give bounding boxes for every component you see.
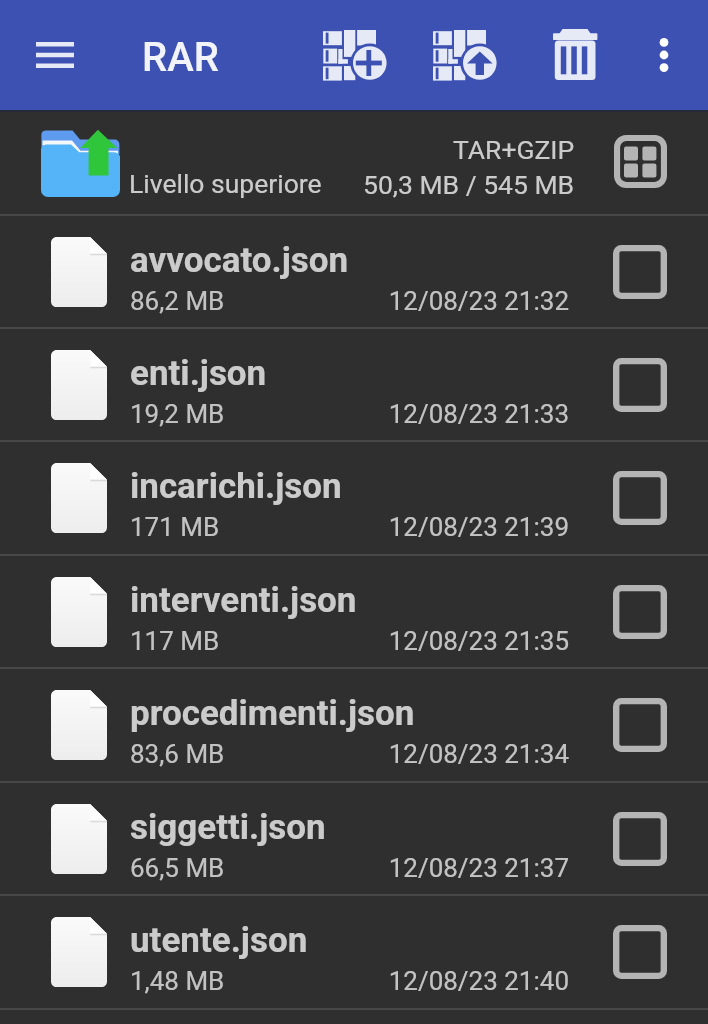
button[interactable]: incarichi.json (0, 442, 708, 554)
staticText: avvocato.json (130, 240, 349, 281)
button[interactable]: Delete (535, 14, 615, 94)
staticText: RAR (142, 34, 219, 81)
button[interactable]: Livello superiore (0, 112, 708, 214)
button[interactable]: Extract archive (423, 13, 509, 99)
staticText: 12/08/23 21:37 (300, 853, 569, 883)
staticText: siggetti.json (130, 807, 326, 848)
button[interactable]: enti.json (0, 329, 708, 440)
staticText: 12/08/23 21:40 (300, 966, 569, 996)
button[interactable]: Grid view (602, 123, 678, 199)
staticText: incarichi.json (130, 466, 342, 507)
staticText: TAR+GZIP (453, 134, 575, 165)
button[interactable]: siggetti.json (0, 783, 708, 894)
staticText: utente.json (130, 920, 308, 961)
staticText: 12/08/23 21:34 (300, 739, 569, 769)
button[interactable]: procedimenti.json (0, 669, 708, 781)
staticText: 66,5 MB (130, 853, 225, 883)
staticText: enti.json (130, 353, 267, 394)
button[interactable]: Select enti.json (602, 347, 678, 423)
staticText: 12/08/23 21:35 (300, 626, 569, 656)
button[interactable]: Select utente.json (602, 914, 678, 990)
staticText: 117 MB (130, 626, 220, 656)
staticText: interventi.json (130, 580, 357, 621)
staticText: 171 MB (130, 512, 220, 542)
button[interactable]: utente.json (0, 896, 708, 1008)
button[interactable]: Navigation menu (18, 18, 92, 92)
staticText: 19,2 MB (130, 399, 225, 429)
staticText: 83,6 MB (130, 739, 225, 769)
button[interactable]: Add to archive (313, 13, 399, 99)
button[interactable]: Select procedimenti.json (602, 687, 678, 763)
button[interactable]: Select avvocato.json (602, 234, 678, 310)
staticText: procedimenti.json (130, 693, 415, 734)
staticText: 12/08/23 21:33 (300, 399, 569, 429)
staticText: 1,48 MB (130, 966, 225, 996)
button[interactable]: interventi.json (0, 556, 708, 667)
button[interactable]: Select interventi.json (602, 574, 678, 650)
staticText: Livello superiore (129, 168, 322, 199)
button[interactable]: More options (630, 21, 698, 89)
button[interactable]: Select incarichi.json (602, 460, 678, 536)
staticText: 50,3 MB / 545 MB (363, 169, 575, 200)
button[interactable]: Select siggetti.json (602, 801, 678, 877)
button[interactable]: avvocato.json (0, 216, 708, 327)
staticText: 12/08/23 21:39 (300, 512, 569, 542)
staticText: 12/08/23 21:32 (300, 286, 569, 316)
staticText: 86,2 MB (130, 286, 225, 316)
